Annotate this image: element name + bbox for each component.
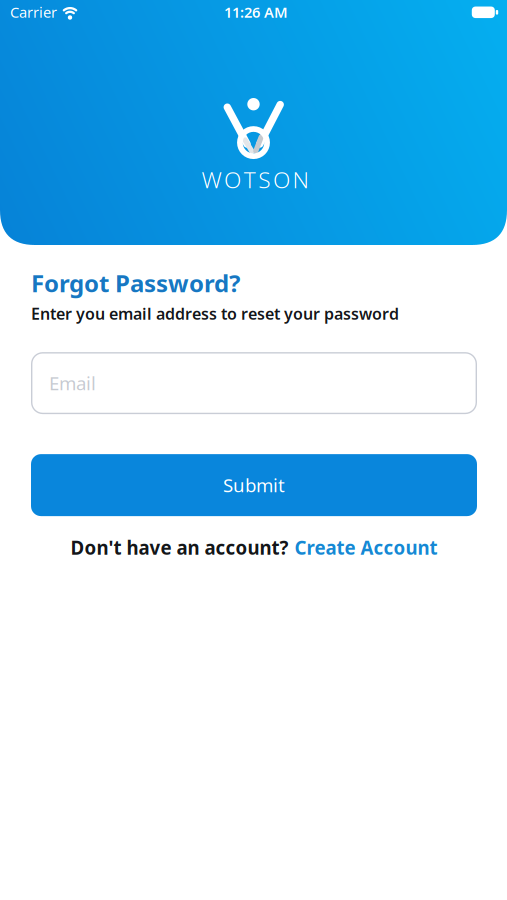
staticText: W: [201, 164, 221, 194]
staticText: Forgot Password?: [31, 267, 240, 299]
button[interactable]: Submit: [31, 454, 477, 516]
button[interactable]: Create Account: [294, 535, 437, 560]
staticText: Create Account: [294, 535, 437, 560]
staticText: Enter you email address to reset your pa…: [31, 303, 399, 324]
staticText: Don't have an account?: [70, 535, 288, 560]
staticText: Email: [49, 371, 96, 395]
staticText: N: [292, 164, 309, 194]
staticText: Carrier: [10, 2, 57, 22]
staticText: Submit: [223, 473, 285, 497]
staticText: O: [224, 164, 241, 194]
textField[interactable]: [31, 368, 477, 398]
staticText: O: [273, 164, 290, 194]
staticText: T: [244, 164, 256, 194]
staticText: S: [258, 164, 270, 194]
staticText: 11:26 AM: [224, 2, 288, 22]
